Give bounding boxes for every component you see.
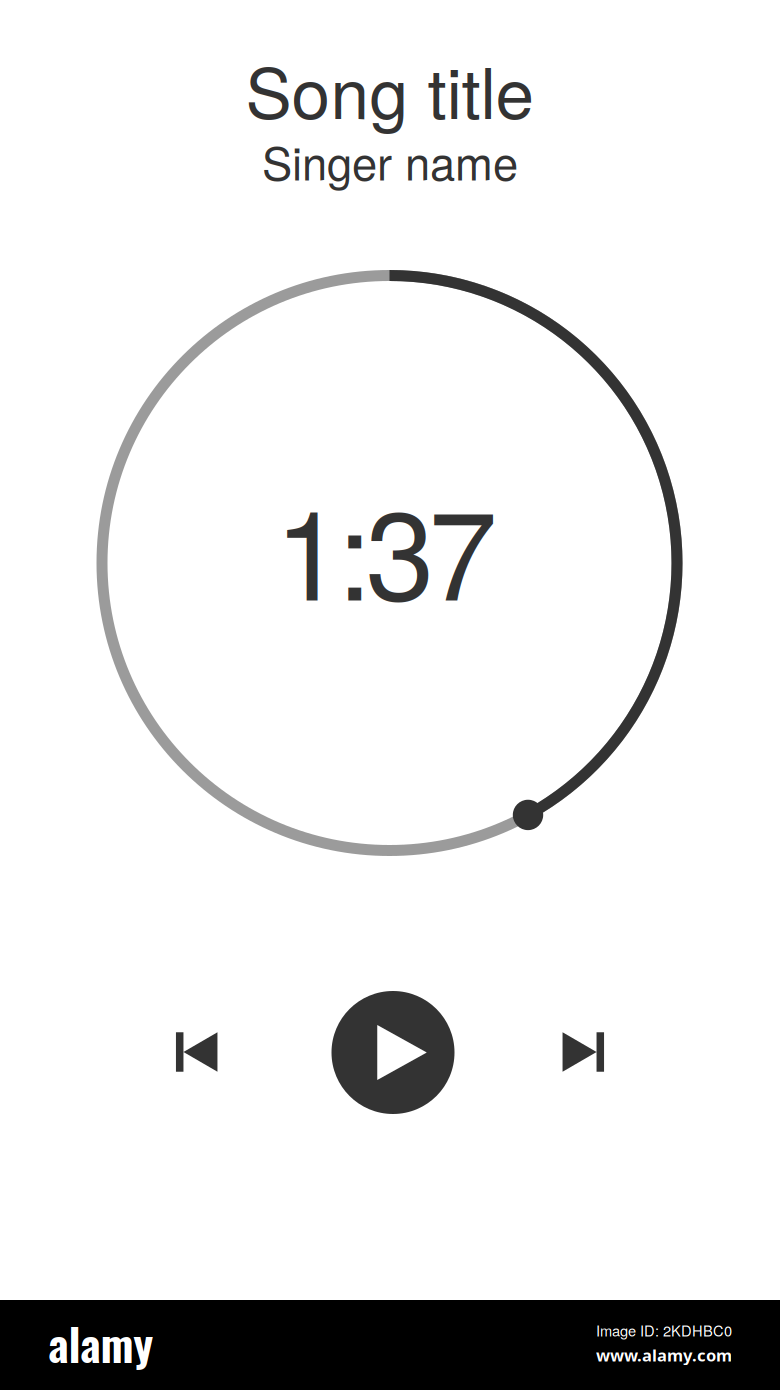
staticText: Singer name	[262, 128, 518, 193]
staticText: www.alamy.com	[596, 1344, 732, 1366]
staticText: Song title	[245, 39, 534, 139]
button[interactable]: Previous track	[148, 1004, 245, 1100]
staticText: alamy	[48, 1310, 153, 1376]
staticText: Image ID: 2KDHBC0	[596, 1320, 732, 1341]
staticText: 1:37	[274, 458, 497, 636]
button[interactable]: Play	[331, 991, 454, 1114]
button[interactable]: Next track	[534, 1004, 632, 1100]
